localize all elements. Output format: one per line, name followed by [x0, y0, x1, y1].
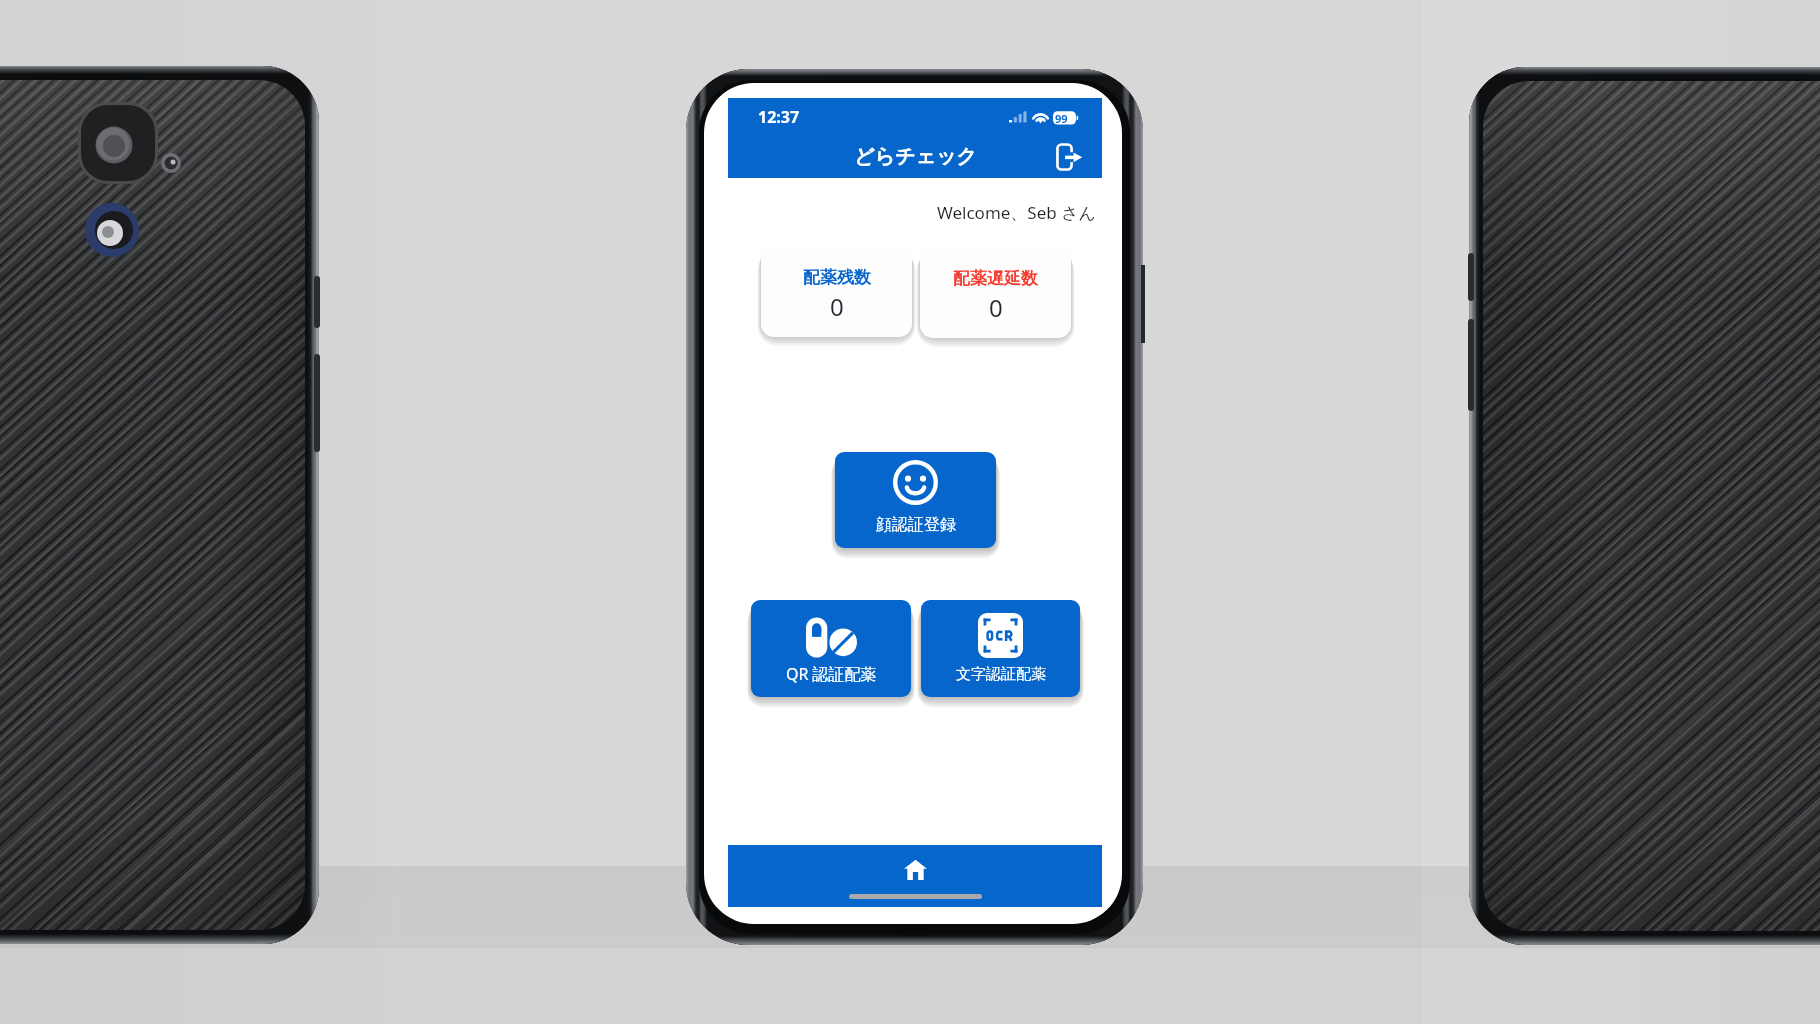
staticText: 0	[830, 290, 844, 323]
button[interactable]: Logout	[1055, 142, 1083, 172]
staticText: 0	[989, 291, 1003, 324]
staticText: 文字認証配薬	[956, 665, 1046, 684]
button[interactable]: Home	[904, 859, 927, 880]
button[interactable]: 配薬残数	[761, 246, 912, 337]
staticText: 99	[1055, 111, 1068, 126]
staticText: 12:37	[758, 106, 800, 128]
staticText: 配薬残数	[803, 267, 871, 288]
staticText: QR 認証配薬	[786, 663, 877, 685]
button[interactable]: 顔認証登録	[835, 452, 996, 548]
button[interactable]: 文字認証配薬	[921, 600, 1080, 697]
staticText: 配薬遅延数	[953, 268, 1038, 289]
staticText: Welcome、Seb さん	[937, 201, 1096, 224]
button[interactable]: QR 認証配薬	[751, 600, 911, 697]
staticText: 顔認証登録	[876, 515, 956, 535]
button[interactable]: 配薬遅延数	[920, 247, 1071, 338]
staticText: どらチェック	[854, 144, 977, 169]
